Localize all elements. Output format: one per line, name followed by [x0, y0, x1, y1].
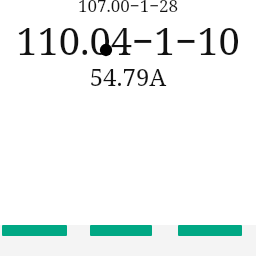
- staticText: 54.79A: [0, 60, 256, 93]
- staticText: 110.04−1−10: [0, 14, 256, 66]
- button[interactable]: [2, 225, 67, 236]
- button[interactable]: [178, 225, 242, 236]
- button[interactable]: [90, 225, 152, 236]
- other: Point marker: [98, 42, 114, 58]
- staticText: 107.00−1−28: [0, 0, 256, 17]
